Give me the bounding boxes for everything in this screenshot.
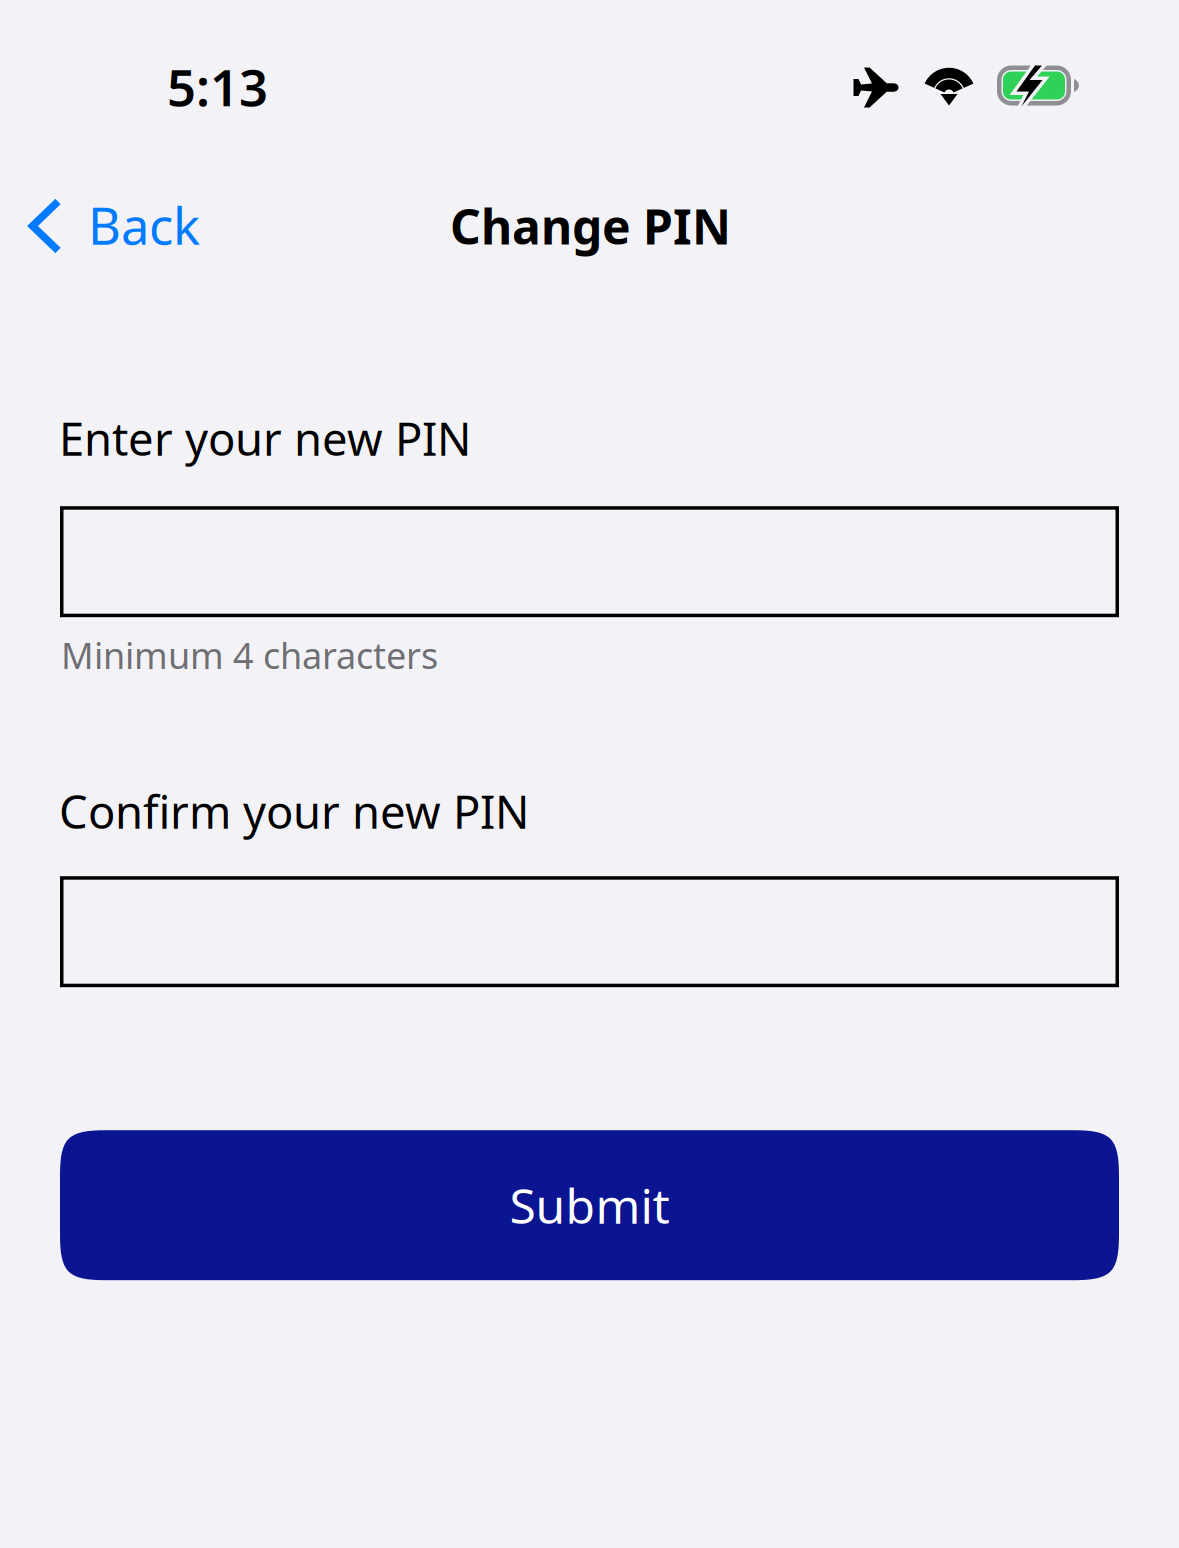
staticText: 5:13 (167, 53, 268, 120)
button[interactable]: Enter your new PIN (60, 506, 1119, 617)
button[interactable]: Back (0, 183, 224, 269)
button[interactable]: Confirm your new PIN (60, 876, 1119, 987)
staticText: Minimum 4 characters (61, 631, 438, 679)
staticText: Confirm your new PIN (59, 781, 529, 841)
staticText: Enter your new PIN (59, 408, 471, 468)
button[interactable]: Submit (60, 1130, 1119, 1280)
staticText: Submit (509, 1173, 669, 1237)
staticText: Back (88, 191, 200, 259)
staticText: Change PIN (450, 194, 731, 258)
